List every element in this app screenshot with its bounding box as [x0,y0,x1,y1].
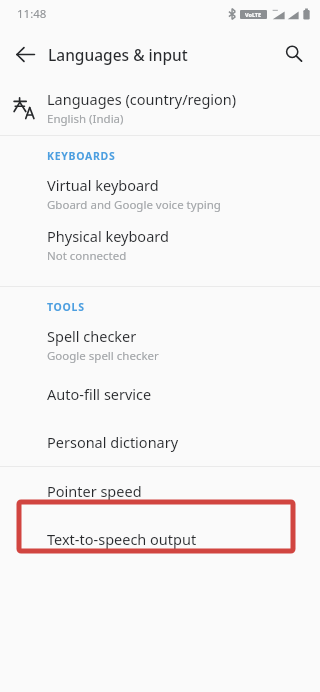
staticText: Not connected [47,248,127,264]
button[interactable]: Auto-fill service [0,370,320,418]
staticText: TOOLS [47,300,85,314]
staticText: 11:48 [17,6,47,22]
staticText: Pointer speed [47,481,142,501]
staticText: Spell checker [47,326,137,346]
staticText: Personal dictionary [47,432,179,452]
button[interactable]: Spell checker [0,319,320,370]
staticText: English (India) [47,111,124,127]
button[interactable]: Search [276,36,312,72]
staticText: VoLTE [245,11,262,18]
staticText: Gboard and Google voice typing [47,197,221,213]
staticText: Physical keyboard [47,226,169,246]
staticText: Languages (country/region) [47,89,237,109]
staticText: Languages & input [48,44,188,65]
button[interactable]: Pointer speed [0,467,320,515]
staticText: Auto-fill service [47,384,152,404]
staticText: KEYBOARDS [47,149,116,163]
button[interactable]: Back [7,36,43,72]
staticText: Google spell checker [47,348,159,364]
button[interactable]: Text-to-speech output [0,515,320,563]
button[interactable]: Physical keyboard [0,219,320,270]
staticText: Virtual keyboard [47,175,159,195]
button[interactable]: Virtual keyboard [0,168,320,219]
button[interactable]: Personal dictionary [0,418,320,466]
staticText: Text-to-speech output [47,529,197,549]
button[interactable]: Languages (country/region) [0,80,320,135]
